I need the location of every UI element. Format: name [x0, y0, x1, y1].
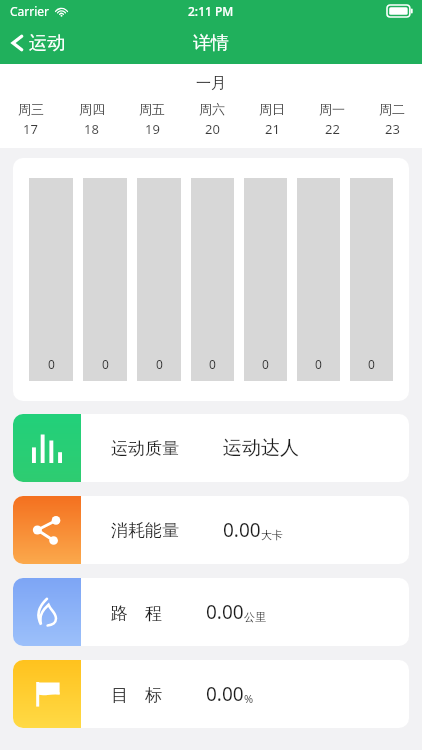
staticText: 周三: [18, 101, 44, 117]
staticText: 0.00: [206, 599, 244, 625]
staticText: Carrier: [10, 3, 50, 19]
button[interactable]: 周日: [242, 101, 302, 138]
staticText: 0.00: [223, 517, 261, 543]
staticText: 公里: [244, 610, 266, 624]
staticText: 18: [84, 120, 99, 138]
button[interactable]: 周六: [182, 101, 242, 138]
button[interactable]: 周五: [122, 101, 182, 138]
staticText: 路 程: [111, 601, 162, 624]
other: Calories: [13, 496, 81, 564]
staticText: 0: [209, 356, 216, 372]
staticText: 17: [23, 120, 38, 138]
staticText: %: [244, 691, 254, 706]
staticText: 21: [265, 120, 280, 138]
staticText: 运动: [29, 32, 65, 55]
button[interactable]: Goal: [13, 660, 409, 728]
button[interactable]: Distance: [13, 578, 409, 646]
button[interactable]: 周一: [302, 101, 362, 138]
button[interactable]: 周四: [61, 101, 122, 138]
staticText: 2:11 PM: [188, 3, 234, 19]
staticText: 0: [48, 356, 55, 372]
staticText: 消耗能量: [111, 520, 179, 541]
staticText: 目 标: [111, 683, 162, 706]
staticText: 周日: [259, 101, 285, 117]
staticText: 0.00: [206, 681, 244, 707]
other: Exercise quality: [13, 414, 81, 482]
button[interactable]: 周三: [0, 101, 61, 138]
button[interactable]: 周二: [362, 101, 422, 138]
staticText: 详情: [193, 32, 229, 55]
staticText: 20: [205, 120, 220, 138]
staticText: 大卡: [261, 528, 283, 542]
other: Distance: [13, 578, 81, 646]
button[interactable]: Calories: [13, 496, 409, 564]
button[interactable]: Exercise quality: [13, 414, 409, 482]
staticText: 0: [102, 356, 109, 372]
staticText: 0: [262, 356, 269, 372]
staticText: 运动达人: [223, 436, 299, 460]
staticText: 23: [385, 120, 400, 138]
staticText: 运动质量: [111, 438, 179, 459]
staticText: 周四: [79, 101, 105, 117]
staticText: 22: [325, 120, 340, 138]
other: Goal: [13, 660, 81, 728]
button[interactable]: 运动: [0, 22, 75, 64]
staticText: 周一: [319, 101, 345, 117]
staticText: 周六: [199, 101, 225, 117]
staticText: 0: [315, 356, 322, 372]
staticText: 周二: [379, 101, 405, 117]
staticText: 19: [145, 120, 160, 138]
staticText: 0: [156, 356, 163, 372]
staticText: 0: [368, 356, 375, 372]
staticText: 一月: [0, 74, 422, 93]
staticText: 周五: [139, 101, 165, 117]
